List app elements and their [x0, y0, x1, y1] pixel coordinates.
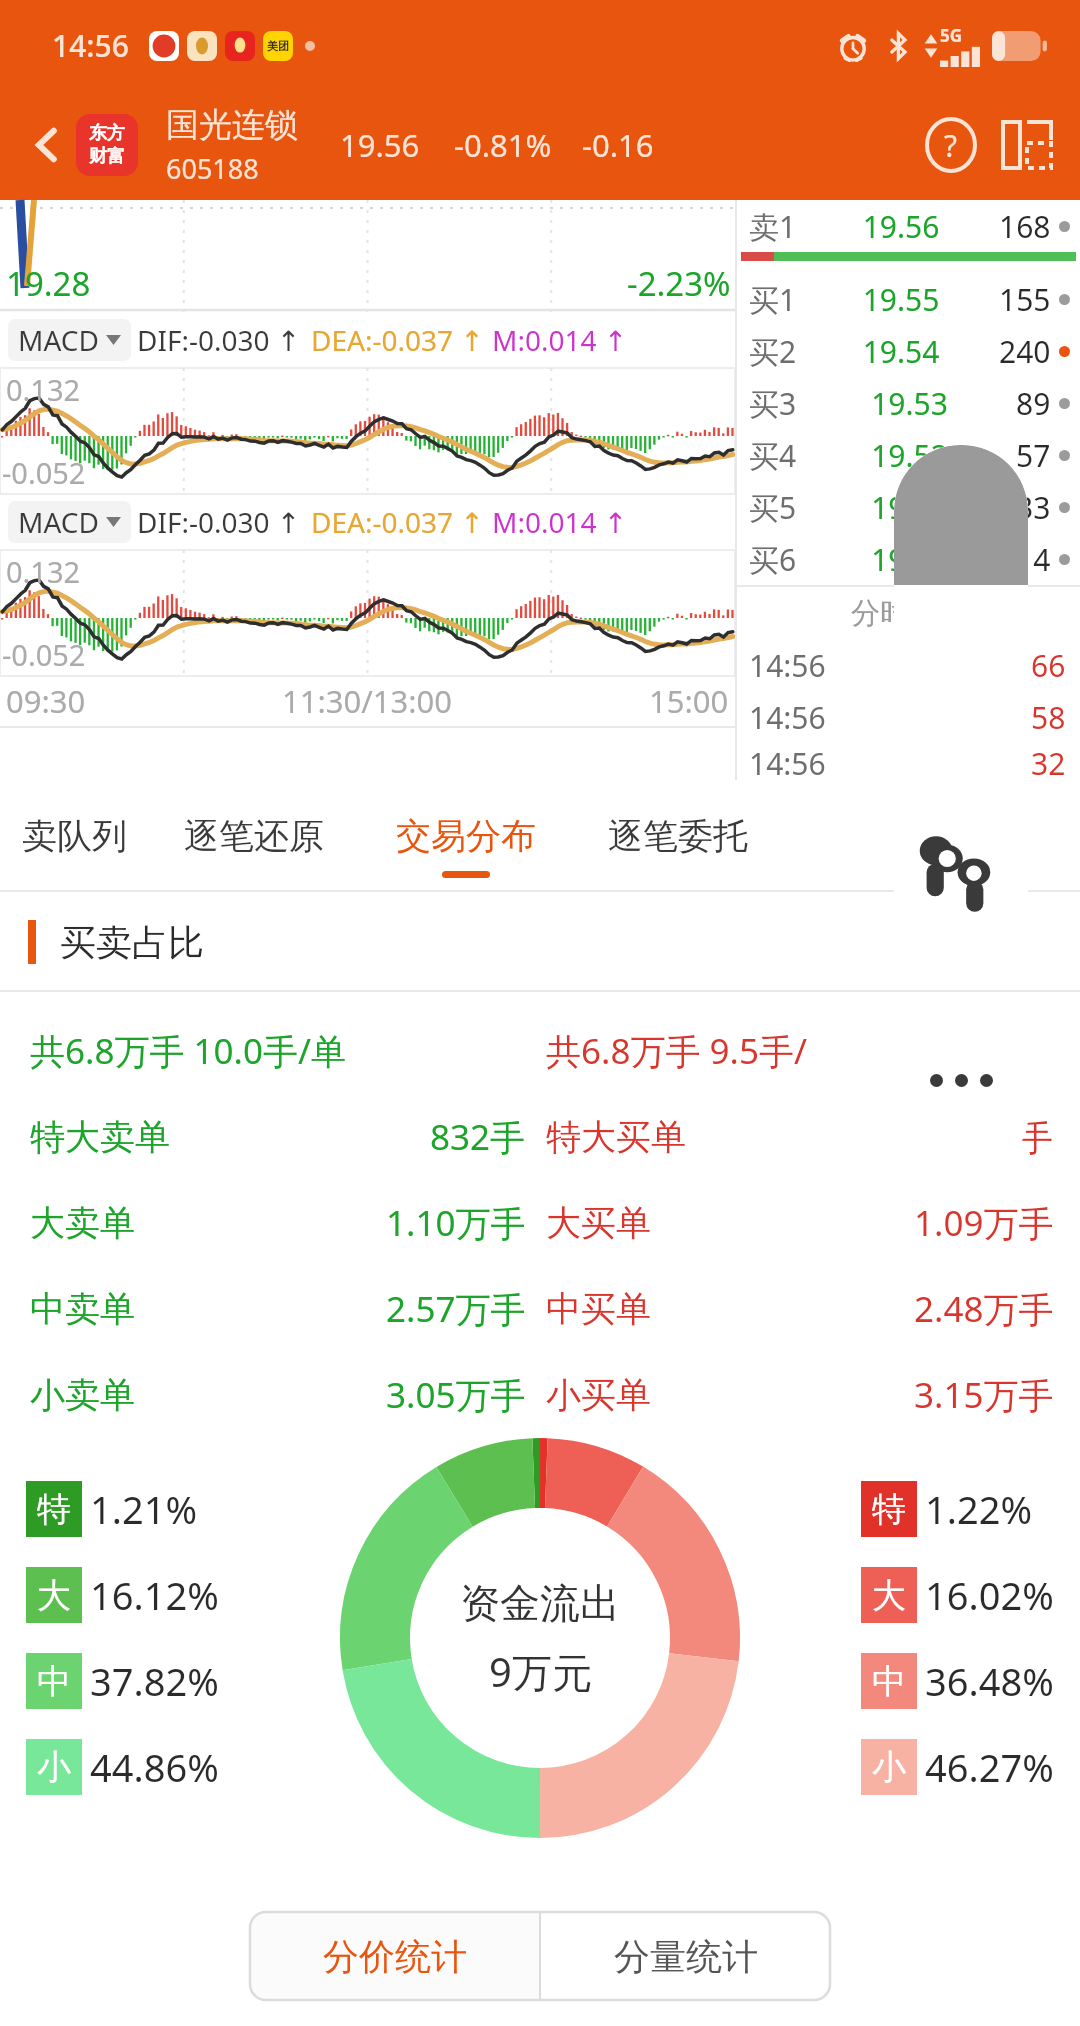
staticText: 19.51	[803, 487, 1016, 528]
staticText: 分量统计	[614, 1934, 758, 1979]
staticText: 9万元	[489, 1644, 592, 1699]
button[interactable]: MACD	[8, 319, 131, 361]
button[interactable]: 卖1	[737, 200, 1080, 252]
staticText: 分时成交	[851, 595, 967, 632]
staticText: 46.27%	[925, 1741, 1054, 1793]
button[interactable]: 买4	[737, 429, 1080, 481]
button[interactable]: 买2	[737, 325, 1080, 377]
staticText: 14:56	[749, 645, 826, 686]
staticText: 19.50	[803, 539, 1016, 580]
button[interactable]: 逐笔还原	[148, 780, 360, 892]
staticText: 小买单	[546, 1373, 651, 1417]
staticText: 大买单	[546, 1201, 651, 1245]
button[interactable]: 交易分布	[360, 780, 572, 892]
staticText: 卖1	[749, 206, 797, 247]
staticText: 分价统计	[323, 1934, 467, 1979]
button[interactable]: East Money	[76, 114, 138, 176]
staticText: -0.052	[2, 635, 86, 674]
staticText: 中买单	[546, 1287, 651, 1331]
staticText: 小卖单	[30, 1373, 135, 1417]
staticText: 共6.8万手 10.0手/单	[30, 1027, 540, 1075]
staticText: 66	[1031, 645, 1066, 686]
staticText: 美团	[267, 39, 289, 53]
staticText: 1.10万手	[386, 1199, 526, 1247]
staticText: 交易分布	[396, 814, 536, 858]
staticText: 37.82%	[90, 1655, 219, 1707]
staticText: 240	[999, 331, 1051, 372]
staticText: 财富	[89, 145, 125, 168]
button[interactable]: 买6	[737, 533, 1080, 585]
staticText: 2.48万手	[914, 1285, 1054, 1333]
staticText: 2.57万手	[386, 1285, 526, 1333]
staticText: DEA:-0.037 ↑	[311, 321, 484, 359]
button[interactable]: 卖队列	[0, 780, 148, 892]
button[interactable]: Change layout	[996, 114, 1058, 176]
staticText: DIF:-0.030 ↑	[137, 321, 301, 359]
staticText: MACD	[18, 503, 99, 541]
staticText: 大	[872, 1574, 906, 1617]
staticText: 19.56	[340, 124, 420, 166]
button[interactable]: 明	[784, 780, 1080, 892]
staticText: 19.55	[803, 279, 999, 320]
staticText: 168	[999, 206, 1051, 247]
staticText: 14:56	[749, 743, 826, 780]
staticText: 155	[999, 279, 1051, 320]
button[interactable]: 买5	[737, 481, 1080, 533]
button[interactable]: 分量统计	[541, 1912, 830, 2000]
button[interactable]: Earbuds	[894, 445, 1028, 975]
staticText: 特	[872, 1488, 906, 1531]
staticText: DEA:-0.037 ↑	[311, 503, 484, 541]
staticText: 3.15万手	[914, 1371, 1054, 1419]
staticText: 买2	[749, 331, 797, 372]
staticText: -2.23%	[627, 261, 731, 306]
staticText: 买1	[749, 279, 797, 320]
button[interactable]: 逐笔委托	[572, 780, 784, 892]
staticText: -0.16	[582, 124, 654, 166]
staticText: 大	[37, 1574, 71, 1617]
staticText: 19.54	[803, 331, 999, 372]
staticText: 0.132	[6, 552, 81, 591]
staticText: 卖队列	[22, 814, 127, 858]
staticText: 57	[1016, 435, 1051, 476]
button[interactable]: Help	[920, 114, 982, 176]
staticText: 逐笔还原	[184, 814, 324, 858]
staticText: 买5	[749, 487, 797, 528]
staticText: 89	[1016, 383, 1051, 424]
button[interactable]: 14:56	[737, 743, 1080, 780]
button[interactable]: Back	[18, 116, 76, 174]
staticText: 共6.8万手 9.5手/	[546, 1027, 1080, 1075]
staticText: -0.052	[2, 453, 86, 492]
staticText: MACD	[18, 321, 99, 359]
staticText: 资金流出	[460, 1578, 620, 1628]
staticText: 605188	[166, 150, 259, 187]
staticText: 19.53	[803, 383, 1016, 424]
button[interactable]: 14:56	[737, 639, 1080, 691]
staticText: 36.48%	[925, 1655, 1054, 1707]
staticText: 5G	[940, 24, 963, 47]
button[interactable]: 买1	[737, 273, 1080, 325]
staticText: 33	[1016, 487, 1051, 528]
staticText: 3.05万手	[386, 1371, 526, 1419]
button[interactable]: 买3	[737, 377, 1080, 429]
staticText: 国光连锁	[166, 104, 298, 146]
staticText: DIF:-0.030 ↑	[137, 503, 301, 541]
staticText: 14:56	[749, 697, 826, 738]
staticText: 特	[37, 1488, 71, 1531]
button[interactable]: 分价统计	[250, 1912, 539, 2000]
staticText: 1.22%	[925, 1483, 1032, 1535]
staticText: M:0.014 ↑	[492, 503, 628, 541]
staticText: 小	[872, 1746, 906, 1789]
staticText: 832手	[430, 1113, 526, 1161]
staticText: 09:30	[6, 680, 86, 722]
staticText: 15:00	[649, 680, 729, 722]
staticText: 58	[1031, 697, 1066, 738]
staticText: 买卖占比	[60, 920, 204, 965]
staticText: 19.28	[6, 261, 91, 306]
staticText: 16.12%	[90, 1569, 219, 1621]
staticText: 32	[1031, 743, 1066, 780]
button[interactable]: MACD	[8, 501, 131, 543]
button[interactable]: 14:56	[737, 691, 1080, 743]
button[interactable]: More	[894, 1000, 1028, 1160]
staticText: 11:30/13:00	[282, 680, 453, 722]
